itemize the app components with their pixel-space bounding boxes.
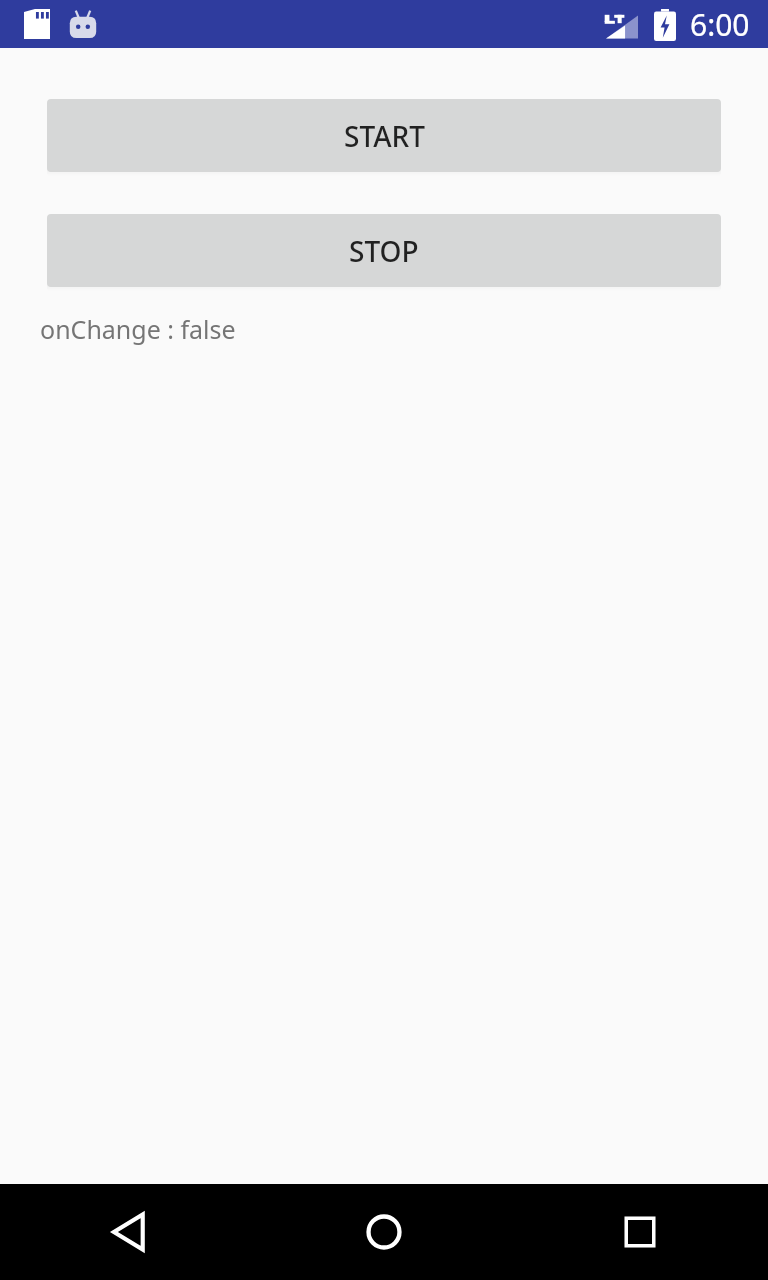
button[interactable]: Recent apps (512, 1184, 768, 1280)
button[interactable]: START (47, 99, 721, 172)
staticText: START (344, 117, 425, 155)
button[interactable]: Back (0, 1184, 256, 1280)
button[interactable]: Home (256, 1184, 512, 1280)
staticText: STOP (349, 232, 419, 270)
staticText: onChange : false (40, 312, 236, 346)
staticText: 6:00 (690, 4, 750, 45)
button[interactable]: STOP (47, 214, 721, 287)
